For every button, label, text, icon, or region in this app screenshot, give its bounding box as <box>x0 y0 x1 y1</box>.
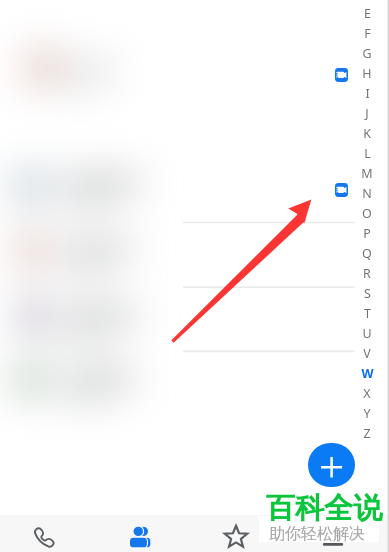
staticText: J <box>365 105 369 122</box>
button[interactable]: H <box>357 63 377 83</box>
button[interactable]: F <box>357 23 377 43</box>
staticText: Z <box>363 425 371 442</box>
button[interactable]: Z <box>357 423 377 443</box>
staticText: R <box>363 265 371 282</box>
staticText: X <box>363 385 371 402</box>
button[interactable]: Q <box>357 243 377 263</box>
staticText: O <box>362 205 372 222</box>
staticText: M <box>361 165 373 182</box>
button[interactable]: I <box>357 83 377 103</box>
button[interactable]: X <box>357 383 377 403</box>
button[interactable]: Favourites <box>188 515 284 552</box>
staticText: N <box>362 185 372 202</box>
button[interactable]: J <box>357 103 377 123</box>
staticText: Y <box>363 405 371 422</box>
button[interactable]: G <box>357 43 377 63</box>
button[interactable]: Dialer <box>0 515 92 552</box>
staticText: H <box>362 65 372 82</box>
button[interactable]: Video call <box>335 183 348 197</box>
staticText: Q <box>362 245 372 262</box>
button[interactable]: L <box>357 143 377 163</box>
button[interactable]: W <box>357 363 377 383</box>
button[interactable]: S <box>357 283 377 303</box>
staticText: F <box>364 25 371 42</box>
button[interactable]: K <box>357 123 377 143</box>
staticText: U <box>362 325 372 342</box>
button[interactable]: T <box>357 303 377 323</box>
button[interactable]: P <box>357 223 377 243</box>
staticText: S <box>364 285 371 302</box>
staticText: V <box>363 345 371 362</box>
button[interactable]: E <box>357 3 377 23</box>
button[interactable]: N <box>357 183 377 203</box>
button[interactable]: Contacts <box>92 515 188 552</box>
button[interactable]: R <box>357 263 377 283</box>
staticText: W <box>361 365 374 382</box>
staticText: E <box>364 5 371 22</box>
staticText: T <box>364 305 371 322</box>
staticText: I <box>365 85 370 102</box>
button[interactable]: V <box>357 343 377 363</box>
staticText: 助你轻松解决 <box>269 524 365 544</box>
staticText: P <box>363 225 371 242</box>
button[interactable]: More <box>284 515 380 552</box>
button[interactable]: U <box>357 323 377 343</box>
staticText: 百科全说 <box>266 490 382 527</box>
staticText: G <box>362 45 372 62</box>
button[interactable]: Y <box>357 403 377 423</box>
button[interactable]: Add contact <box>308 443 355 487</box>
button[interactable]: O <box>357 203 377 223</box>
staticText: L <box>364 145 371 162</box>
button[interactable]: Video call <box>335 68 348 82</box>
staticText: K <box>363 125 371 142</box>
button[interactable]: M <box>357 163 377 183</box>
